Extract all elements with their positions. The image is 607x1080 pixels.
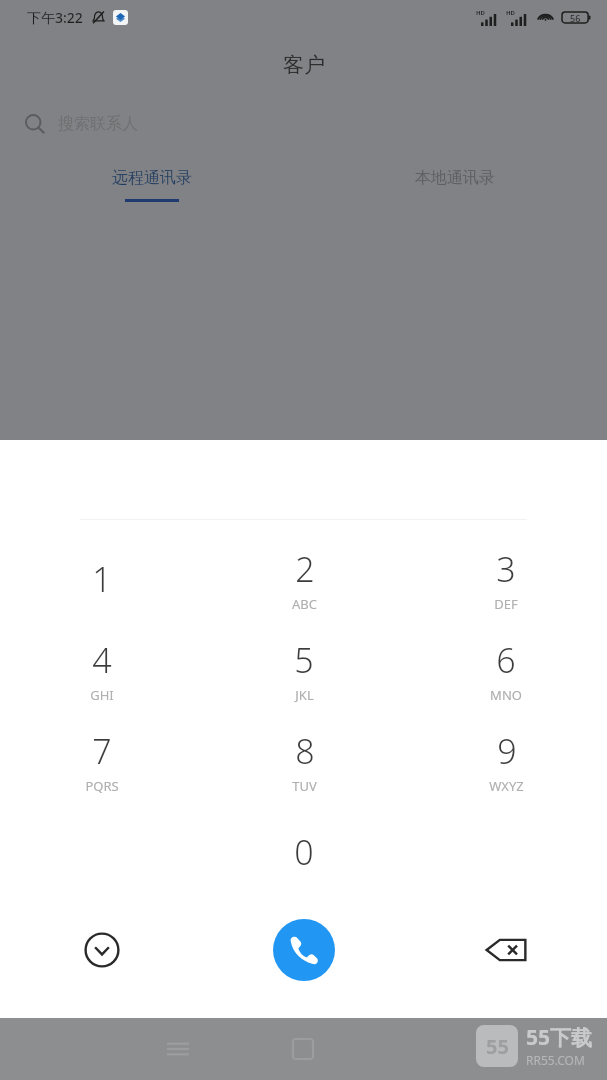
staticText: 55下载 — [526, 1023, 593, 1052]
button[interactable]: 7 — [0, 716, 203, 806]
staticText: 搜索联系人 — [58, 114, 138, 134]
button[interactable]: Backspace — [405, 907, 607, 993]
staticText: 下午3:22 — [27, 8, 83, 27]
staticText: MNO — [490, 686, 522, 704]
button[interactable]: Call — [203, 907, 405, 993]
staticText: 9 — [497, 728, 517, 774]
button[interactable]: 6 — [405, 625, 607, 715]
button[interactable]: 1 — [0, 534, 203, 624]
button[interactable]: 8 — [203, 716, 405, 806]
staticText: 0 — [294, 829, 314, 875]
button[interactable]: 0 — [203, 807, 405, 897]
button[interactable]: Hide dialpad — [0, 907, 203, 993]
staticText: 本地通讯录 — [415, 168, 495, 188]
staticText: 55 — [486, 1033, 509, 1060]
staticText: 8 — [295, 728, 315, 774]
button[interactable]: 9 — [405, 716, 607, 806]
staticText: HD — [476, 9, 485, 17]
staticText: 5 — [294, 637, 314, 683]
button[interactable]: 4 — [0, 625, 203, 715]
staticText: 远程通讯录 — [112, 168, 192, 188]
staticText: WXYZ — [489, 777, 524, 795]
staticText: 7 — [92, 728, 112, 774]
staticText: 3 — [496, 546, 516, 592]
staticText: DEF — [494, 595, 518, 613]
staticText: HD — [506, 9, 515, 17]
staticText: GHI — [90, 686, 114, 704]
staticText: JKL — [295, 686, 314, 704]
staticText: 1 — [92, 556, 112, 602]
staticText: ABC — [292, 595, 317, 613]
staticText: 客户 — [283, 52, 325, 78]
button[interactable]: 远程通讯录 — [0, 168, 303, 202]
staticText: RR55.COM — [526, 1052, 585, 1068]
staticText: 4 — [92, 637, 112, 683]
button[interactable]: Recents — [277, 1023, 329, 1075]
staticText: 56 — [570, 12, 581, 24]
button[interactable]: 2 — [203, 534, 405, 624]
staticText: PQRS — [85, 777, 119, 795]
button[interactable]: 3 — [405, 534, 607, 624]
staticText: TUV — [292, 777, 317, 795]
staticText: 2 — [295, 546, 315, 592]
button[interactable]: 5 — [203, 625, 405, 715]
button[interactable]: Menu — [152, 1023, 204, 1075]
staticText: 6 — [496, 637, 516, 683]
button[interactable]: 本地通讯录 — [303, 168, 607, 202]
